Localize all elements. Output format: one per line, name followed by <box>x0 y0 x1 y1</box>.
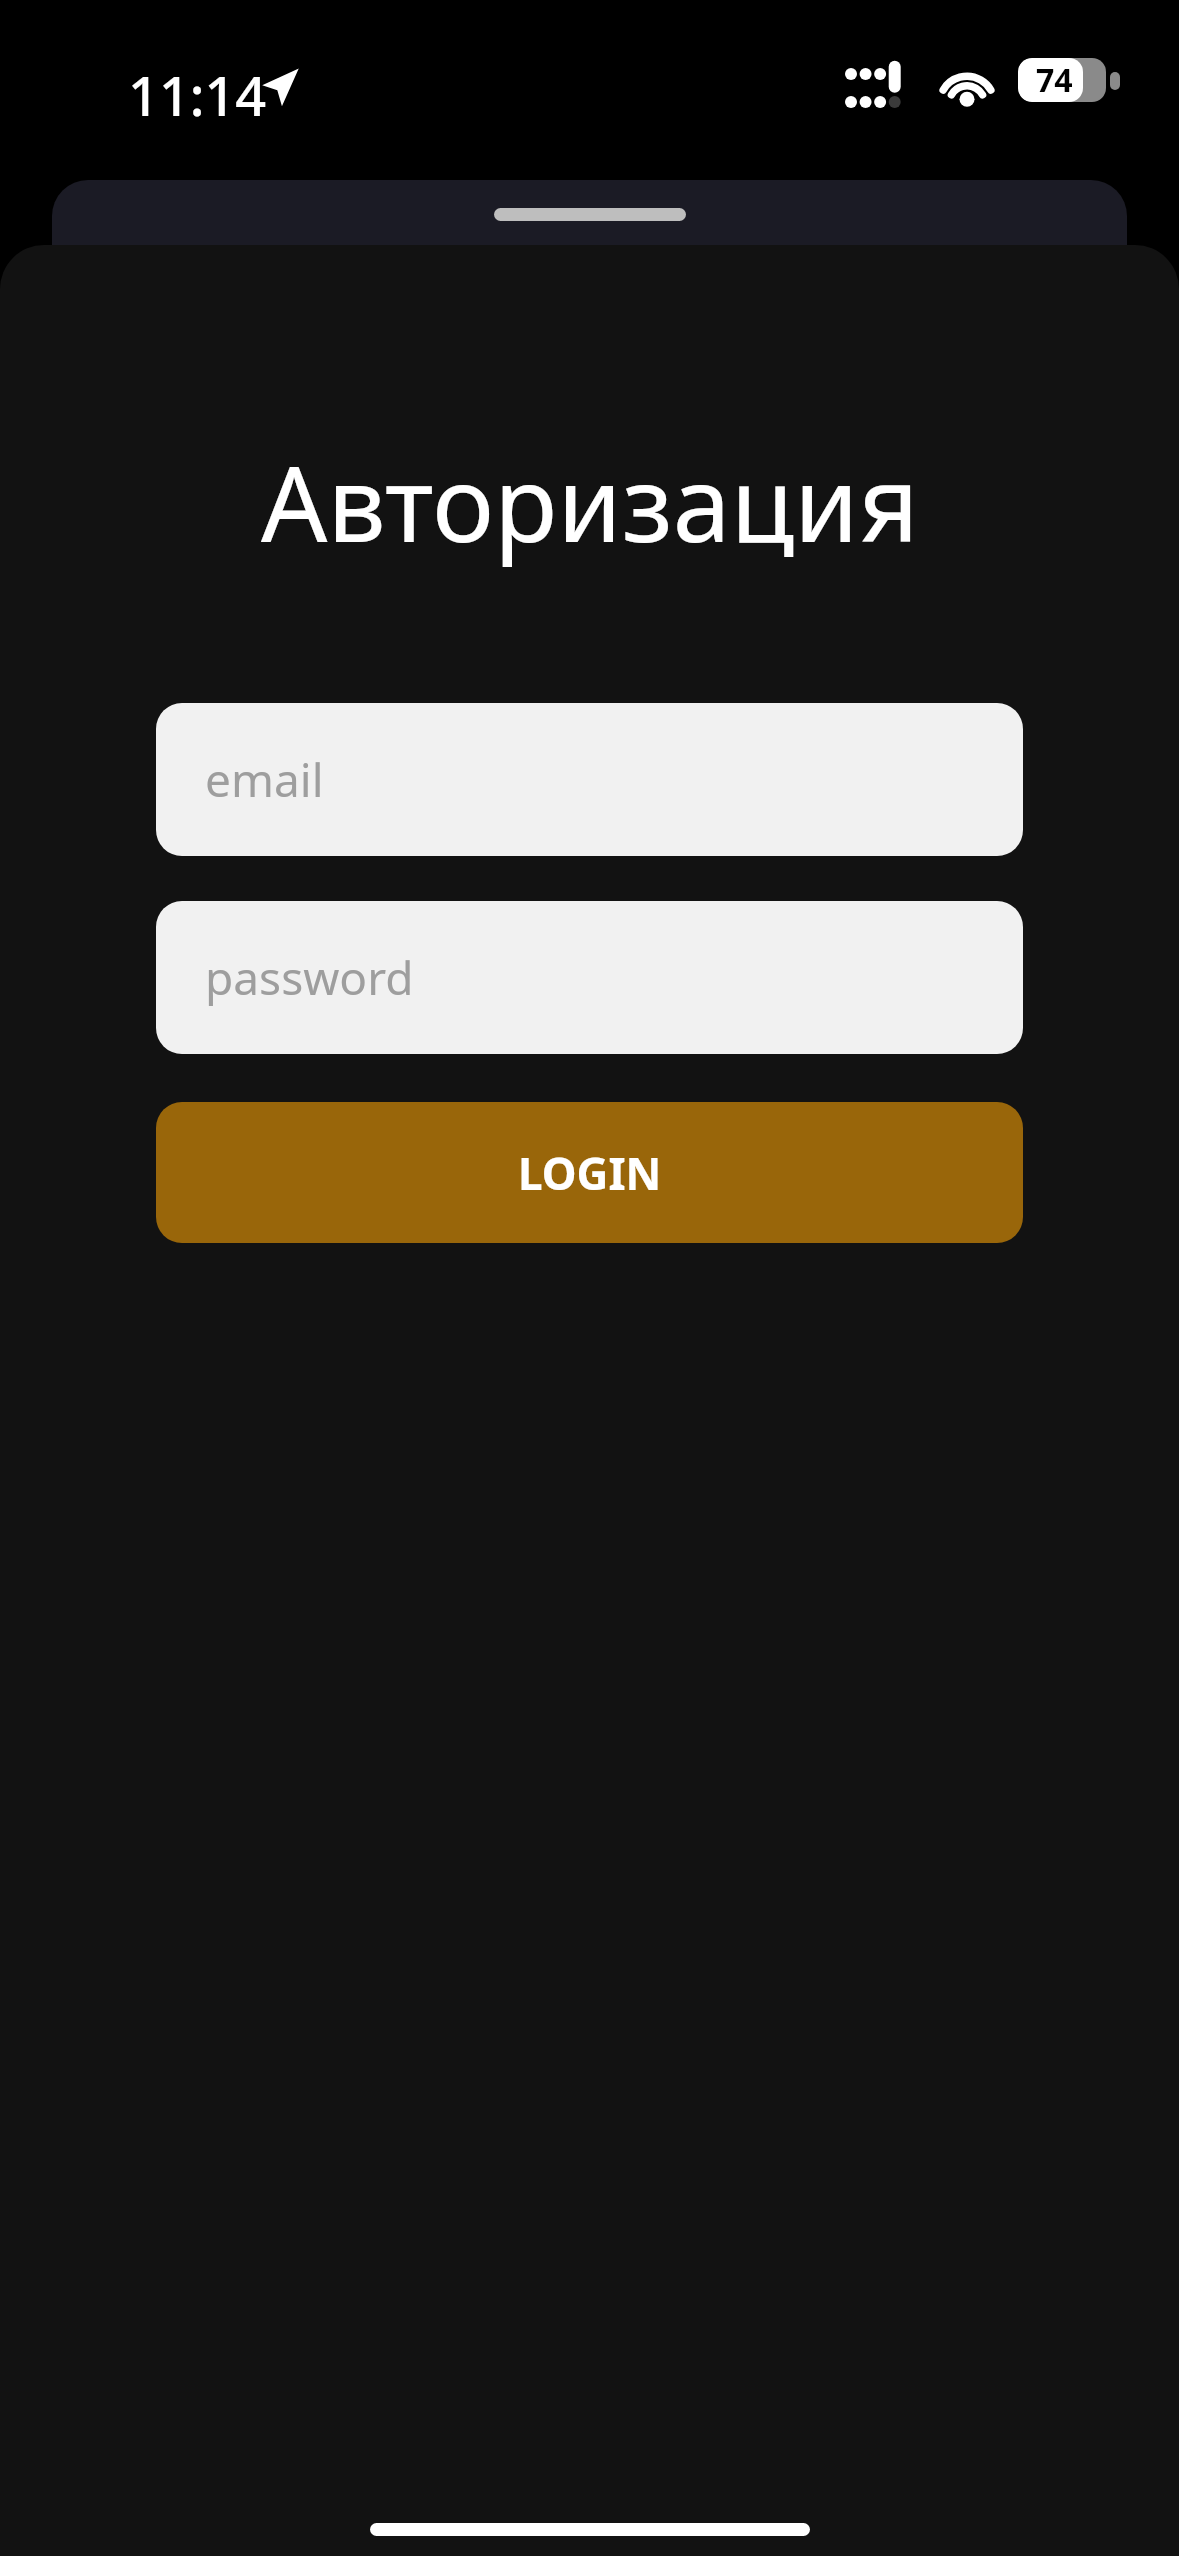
staticText: 74 <box>1036 58 1073 102</box>
staticText: email <box>205 748 324 811</box>
staticText: password <box>205 946 414 1009</box>
button[interactable]: password <box>156 901 1023 1054</box>
button[interactable]: LOGIN <box>156 1102 1023 1243</box>
button[interactable]: email <box>156 703 1023 856</box>
staticText: 11:14 <box>128 58 267 132</box>
staticText: Авторизация <box>261 431 919 573</box>
staticText: LOGIN <box>518 1143 662 1203</box>
